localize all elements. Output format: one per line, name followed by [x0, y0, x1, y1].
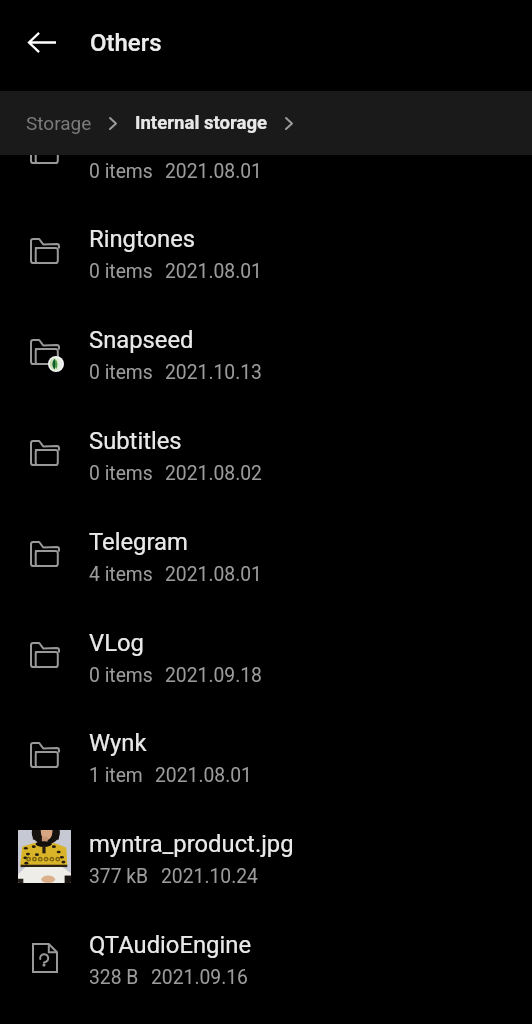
button[interactable]: myntra_product.jpg [0, 806, 532, 907]
button[interactable]: QTAudioEngine [0, 907, 532, 1008]
staticText: 2021.08.01 [155, 764, 252, 787]
staticText: Snapseed [89, 326, 194, 354]
staticText: 2021.10.13 [165, 361, 262, 384]
staticText: 1 item [89, 764, 143, 787]
staticText: 2021.08.01 [165, 260, 262, 283]
staticText: 2021.08.01 [165, 160, 262, 183]
staticText: Subtitles [89, 427, 182, 455]
staticText: QTAudioEngine [89, 931, 252, 959]
staticText: Wynk [89, 729, 147, 757]
staticText: 328 B [89, 966, 139, 989]
button[interactable]: VLog [0, 605, 532, 706]
button[interactable]: Telegram [0, 504, 532, 605]
staticText: 0 items [89, 462, 153, 485]
staticText: 0 items [89, 664, 153, 687]
button[interactable]: Back [16, 16, 68, 68]
staticText: 2021.09.18 [165, 664, 262, 687]
button[interactable]: Subtitles [0, 403, 532, 504]
staticText: VLog [89, 629, 144, 657]
staticText: 377 kB [89, 865, 149, 888]
staticText: 2021.08.01 [165, 563, 262, 586]
button[interactable]: Ringtones [0, 201, 532, 302]
staticText: 0 items [89, 160, 153, 183]
staticText: 4 items [89, 563, 153, 586]
staticText: 0 items [89, 361, 153, 384]
button[interactable]: Internal storage [135, 112, 268, 134]
staticText: 2021.08.02 [165, 462, 262, 485]
staticText: Others [90, 29, 162, 57]
staticText: Ringtones [89, 225, 196, 253]
button[interactable]: Recordings [0, 155, 532, 202]
staticText: myntra_product.jpg [89, 830, 294, 858]
button[interactable]: Snapseed [0, 302, 532, 403]
staticText: 0 items [89, 260, 153, 283]
button[interactable]: Storage [26, 112, 92, 134]
staticText: Telegram [89, 528, 188, 556]
button[interactable]: Wynk [0, 705, 532, 806]
staticText: 2021.09.16 [151, 966, 248, 989]
staticText: 2021.10.24 [161, 865, 258, 888]
